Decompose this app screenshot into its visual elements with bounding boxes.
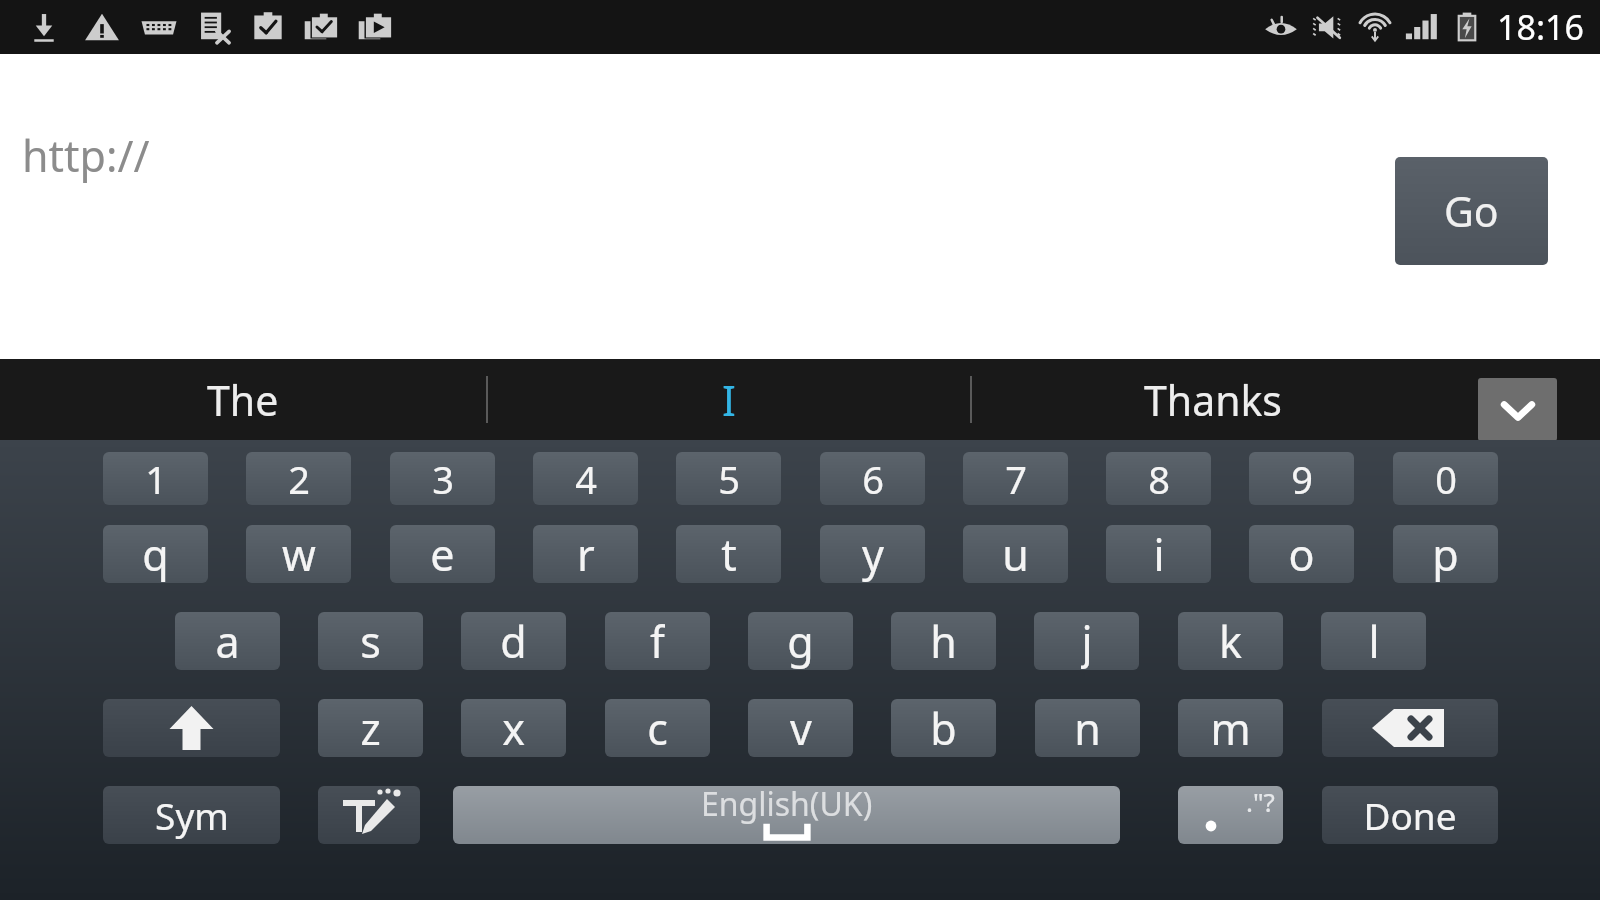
staticText: c [647,699,668,757]
staticText: s [360,612,381,670]
button[interactable]: o [1249,525,1354,583]
staticText: 0 [1435,453,1457,505]
button[interactable]: r [533,525,638,583]
button[interactable]: i [1106,525,1211,583]
button[interactable]: y [820,525,925,583]
button[interactable]: 5 [676,452,781,505]
staticText: u [1002,525,1029,583]
staticText: ."? [1246,786,1275,819]
button[interactable]: l [1321,612,1426,670]
button[interactable]: 9 [1249,452,1354,505]
button[interactable]: c [605,699,710,757]
button[interactable]: j [1034,612,1139,670]
button[interactable]: x [461,699,566,757]
staticText: i [1153,525,1165,583]
button[interactable]: Handwriting input [318,786,420,844]
button[interactable]: e [390,525,495,583]
button[interactable]: 6 [820,452,925,505]
button[interactable]: Done [1322,786,1498,844]
staticText: 8 [1148,453,1170,505]
button[interactable]: Go [1395,157,1548,265]
button[interactable]: Thanks [972,359,1454,440]
staticText: 3 [432,453,454,505]
button[interactable]: m [1178,699,1283,757]
staticText: n [1074,699,1101,757]
staticText: 2 [288,453,310,505]
staticText: 6 [862,453,884,505]
button[interactable]: v [748,699,853,757]
button[interactable]: Space, English (UK) [453,786,1120,844]
staticText: 18:16 [1497,4,1584,50]
staticText: g [787,612,814,670]
button[interactable]: f [605,612,710,670]
staticText: h [930,612,957,670]
staticText: 9 [1291,453,1313,505]
staticText: Sym [155,790,229,840]
staticText: o [1288,525,1315,583]
staticText: Go [1444,183,1499,239]
button[interactable]: t [676,525,781,583]
button[interactable]: 1 [103,452,208,505]
staticText: d [500,612,527,670]
staticText: t [721,525,737,583]
staticText: f [650,612,665,670]
button[interactable]: Shift [103,699,280,757]
button[interactable]: a [175,612,280,670]
button[interactable]: s [318,612,423,670]
button[interactable]: Sym [103,786,280,844]
button[interactable]: q [103,525,208,583]
staticText: j [1081,612,1093,670]
staticText: m [1210,699,1251,757]
button[interactable]: Expand suggestions [1478,378,1557,441]
staticText: v [790,699,812,757]
button[interactable]: z [318,699,423,757]
staticText: Done [1363,790,1457,840]
button[interactable]: Backspace [1322,699,1498,757]
button[interactable]: h [891,612,996,670]
button[interactable]: g [748,612,853,670]
staticText: k [1219,612,1242,670]
staticText: p [1432,525,1459,583]
staticText: 1 [145,453,167,505]
staticText: The [207,372,279,428]
button[interactable]: d [461,612,566,670]
staticText: a [215,612,240,670]
staticText: 4 [575,453,597,505]
button[interactable]: u [963,525,1068,583]
button[interactable]: I [488,359,970,440]
button[interactable]: 8 [1106,452,1211,505]
staticText: I [722,372,736,428]
staticText: x [502,699,525,757]
button[interactable]: 3 [390,452,495,505]
staticText: 7 [1005,453,1027,505]
staticText: e [430,525,455,583]
staticText: w [282,525,316,583]
staticText: q [142,525,169,583]
staticText: y [862,525,884,583]
staticText: l [1368,612,1380,670]
button[interactable]: 4 [533,452,638,505]
staticText: z [360,699,381,757]
staticText: b [930,699,957,757]
button[interactable]: p [1393,525,1498,583]
button[interactable]: Period and punctuation [1178,786,1283,844]
staticText: http:// [22,126,150,185]
button[interactable]: 7 [963,452,1068,505]
button[interactable]: The [0,359,486,440]
button[interactable]: b [891,699,996,757]
staticText: English(UK) [701,786,873,826]
button[interactable]: n [1035,699,1140,757]
staticText: r [577,525,595,583]
staticText: Thanks [1144,372,1283,428]
staticText: 5 [718,453,740,505]
button[interactable]: 0 [1393,452,1498,505]
button[interactable]: k [1178,612,1283,670]
button[interactable]: 2 [246,452,351,505]
button[interactable]: w [246,525,351,583]
